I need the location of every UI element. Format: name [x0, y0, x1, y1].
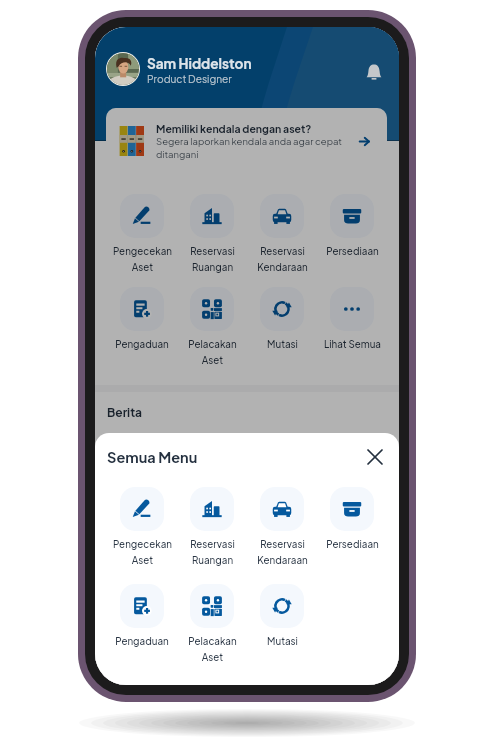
staticText: Semua Menu	[107, 448, 198, 466]
staticText: Reservasi Ruangan	[190, 245, 235, 273]
button[interactable]: Lihat Semua	[317, 287, 387, 350]
button[interactable]: Notifications	[359, 57, 388, 86]
staticText: Mutasi	[267, 635, 298, 647]
staticText: Mutasi	[267, 338, 298, 350]
staticText: Reservasi Kendaraan	[257, 245, 308, 273]
staticText: Lihat Semua	[324, 338, 381, 350]
button[interactable]: Reservasi Ruangan	[177, 487, 247, 566]
staticText: Pelacakan Aset	[188, 338, 237, 366]
staticText: Sam Hiddelston	[147, 55, 252, 72]
button[interactable]: Pengaduan	[107, 584, 177, 647]
staticText: Product Designer	[147, 72, 232, 85]
staticText: Persediaan	[326, 538, 379, 550]
button[interactable]: Close	[362, 444, 388, 470]
button[interactable]: Pelacakan Aset	[177, 584, 247, 663]
button[interactable]: Persediaan	[317, 194, 387, 257]
staticText: Pengecekan Aset	[113, 245, 172, 273]
staticText: Reservasi Ruangan	[190, 538, 235, 566]
staticText: Reservasi Kendaraan	[257, 538, 308, 566]
button[interactable]: Pengecekan Aset	[107, 194, 177, 273]
button[interactable]: Mutasi	[247, 584, 317, 647]
button[interactable]: Mutasi	[247, 287, 317, 350]
button[interactable]: Memiliki kendala dengan aset?	[106, 108, 387, 174]
button[interactable]: Pengecekan Aset	[107, 487, 177, 566]
staticText: Berita	[107, 405, 143, 420]
button[interactable]: Pelacakan Aset	[177, 287, 247, 366]
staticText: Pengecekan Aset	[113, 538, 172, 566]
staticText: Pelacakan Aset	[188, 635, 237, 663]
staticText: Pengaduan	[115, 338, 169, 350]
staticText: Memiliki kendala dengan aset?	[156, 122, 312, 135]
button[interactable]: Reservasi Ruangan	[177, 194, 247, 273]
button[interactable]: Profile	[107, 53, 139, 85]
button[interactable]: Open	[353, 130, 375, 152]
button[interactable]: Pengaduan	[107, 287, 177, 350]
button[interactable]: Persediaan	[317, 487, 387, 550]
button[interactable]: Reservasi Kendaraan	[247, 194, 317, 273]
staticText: Persediaan	[326, 245, 379, 257]
staticText: Pengaduan	[115, 635, 169, 647]
staticText: Segera laporkan kendala anda agar cepat …	[156, 135, 347, 160]
button[interactable]: Reservasi Kendaraan	[247, 487, 317, 566]
